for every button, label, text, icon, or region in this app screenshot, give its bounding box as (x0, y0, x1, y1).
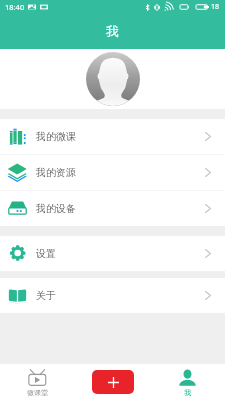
button[interactable]: 我的微课 (0, 119, 225, 154)
button[interactable]: 我的资源 (0, 155, 225, 190)
button[interactable]: 设置 (0, 236, 225, 271)
button[interactable]: 我 (150, 364, 225, 400)
staticText: 我 (106, 23, 119, 39)
staticText: 关于 (36, 289, 56, 302)
button[interactable]: 微课堂 (0, 364, 75, 400)
staticText: 18:40 (5, 2, 25, 12)
staticText: 设置 (36, 247, 56, 260)
staticText: 18 (211, 2, 220, 12)
button[interactable]: 我的设备 (0, 191, 225, 226)
button[interactable]: Add (92, 370, 134, 394)
button[interactable]: 关于 (0, 278, 225, 313)
staticText: 我的设备 (36, 202, 76, 215)
staticText: 微课堂 (27, 388, 48, 397)
staticText: 我的资源 (36, 166, 76, 179)
staticText: 我的微课 (36, 130, 76, 143)
staticText: 我 (184, 388, 191, 397)
